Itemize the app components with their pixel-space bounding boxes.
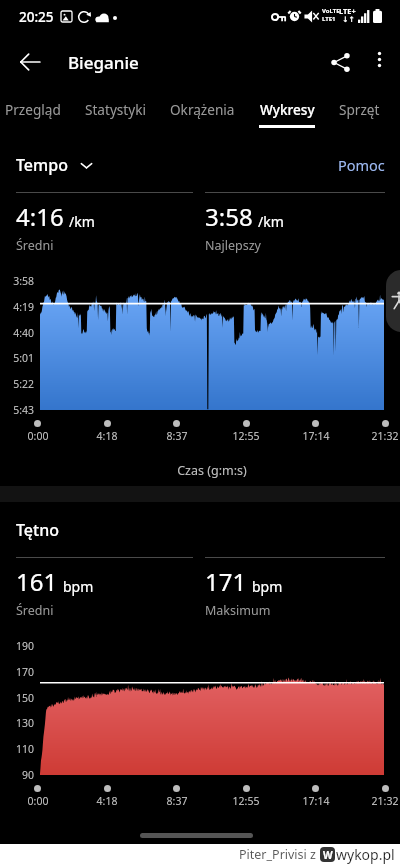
staticText: 8:37: [155, 429, 199, 443]
staticText: 5:22: [0, 377, 34, 391]
staticText: 170: [0, 665, 34, 679]
button[interactable]: Tempo: [16, 154, 93, 176]
staticText: 21:32: [363, 429, 400, 443]
staticText: 4:40: [0, 326, 34, 340]
staticText: 12:55: [224, 429, 268, 443]
staticText: 3:58: [0, 274, 34, 288]
staticText: bpm: [252, 577, 283, 596]
staticText: 171: [205, 565, 247, 598]
button[interactable]: Wykresy: [259, 92, 315, 134]
staticText: 161: [16, 565, 58, 598]
button[interactable]: Back: [6, 38, 54, 86]
button[interactable]: Share: [316, 38, 364, 86]
staticText: Tętno: [16, 519, 59, 541]
button[interactable]: Accessibility: [386, 270, 400, 332]
staticText: Najlepszy: [205, 237, 261, 254]
staticText: Tempo: [16, 154, 68, 176]
staticText: 4:18: [85, 429, 129, 443]
staticText: VoLTE: [322, 7, 340, 15]
staticText: Statystyki: [85, 100, 146, 119]
staticText: 150: [0, 691, 34, 705]
staticText: 4:18: [85, 794, 129, 808]
button[interactable]: Przegląd: [5, 92, 61, 134]
staticText: 17:14: [294, 794, 338, 808]
staticText: 12:55: [224, 794, 268, 808]
staticText: bpm: [63, 577, 94, 596]
staticText: Średni: [16, 602, 54, 619]
staticText: 5:43: [0, 403, 34, 417]
staticText: 5:01: [0, 351, 34, 365]
staticText: 90: [0, 768, 34, 782]
staticText: 17:14: [294, 429, 338, 443]
staticText: /km: [258, 212, 284, 231]
staticText: Maksimum: [205, 602, 271, 619]
staticText: 8:37: [155, 794, 199, 808]
staticText: 110: [0, 742, 34, 756]
staticText: Czas (g:m:s): [40, 462, 384, 479]
button[interactable]: More options: [358, 38, 400, 80]
staticText: Wykresy: [260, 100, 315, 119]
staticText: 21:32: [363, 794, 400, 808]
staticText: 4:19: [0, 300, 34, 314]
staticText: LTE+: [339, 6, 356, 16]
staticText: Bieganie: [68, 51, 139, 74]
staticText: 4:16: [16, 200, 64, 233]
staticText: 130: [0, 716, 34, 730]
staticText: Przegląd: [5, 100, 61, 119]
staticText: Piter_Privisi z: [239, 846, 316, 863]
button[interactable]: Sprzęt: [339, 92, 380, 134]
staticText: ↓↑: [342, 15, 355, 24]
staticText: Okrążenia: [170, 100, 235, 119]
staticText: 3:58: [205, 200, 253, 233]
button[interactable]: Okrążenia: [170, 92, 235, 134]
staticText: Sprzęt: [339, 100, 380, 119]
staticText: W: [323, 848, 333, 862]
button[interactable]: Pomoc: [338, 155, 385, 175]
staticText: 0:00: [16, 429, 60, 443]
staticText: 190: [0, 639, 34, 653]
staticText: 20:25: [19, 8, 54, 26]
staticText: 0:00: [16, 794, 60, 808]
staticText: /km: [69, 212, 95, 231]
staticText: wykop.pl: [336, 845, 395, 864]
button[interactable]: Statystyki: [85, 92, 146, 134]
staticText: Średni: [16, 237, 54, 254]
button[interactable]: Tętno: [16, 519, 59, 541]
staticText: LTE1: [322, 15, 336, 23]
